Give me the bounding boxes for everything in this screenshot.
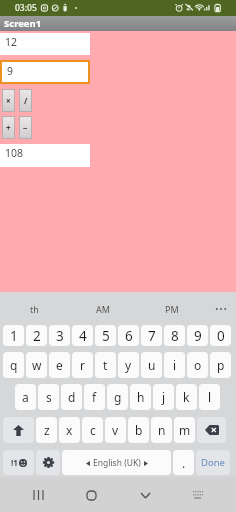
button[interactable]: d bbox=[61, 384, 82, 410]
staticText: PM bbox=[165, 303, 179, 315]
button[interactable]: AM bbox=[68, 292, 137, 325]
staticText: Done bbox=[201, 456, 225, 469]
button[interactable]: 8 bbox=[164, 325, 185, 346]
button[interactable]: Recents bbox=[23, 480, 53, 510]
button[interactable]: Backspace bbox=[197, 417, 226, 443]
button[interactable]: x bbox=[59, 417, 80, 443]
staticText: x bbox=[66, 422, 73, 438]
staticText: 1 bbox=[10, 327, 18, 345]
staticText: o bbox=[194, 357, 202, 373]
button[interactable]: t bbox=[95, 352, 116, 378]
staticText: a bbox=[22, 389, 29, 405]
staticText: 0 bbox=[217, 327, 225, 345]
button[interactable]: p bbox=[210, 352, 231, 378]
staticText: p bbox=[217, 357, 225, 373]
button[interactable]: m bbox=[174, 417, 195, 443]
staticText: × bbox=[6, 95, 11, 106]
staticText: Screen1 bbox=[4, 17, 42, 30]
button[interactable]: v bbox=[105, 417, 126, 443]
staticText: l bbox=[208, 389, 212, 405]
staticText: s bbox=[46, 389, 52, 405]
staticText: . bbox=[182, 455, 186, 471]
staticText: j bbox=[162, 389, 166, 405]
button[interactable]: l bbox=[199, 384, 220, 410]
staticText: h bbox=[137, 389, 145, 405]
button[interactable]: 0 bbox=[210, 325, 231, 346]
button[interactable]: c bbox=[82, 417, 103, 443]
button[interactable]: a bbox=[15, 384, 36, 410]
staticText: 2 bbox=[33, 327, 41, 345]
staticText: − bbox=[23, 122, 28, 133]
staticText: 7 bbox=[148, 327, 156, 345]
button[interactable]: n bbox=[151, 417, 172, 443]
button[interactable]: y bbox=[118, 352, 139, 378]
staticText: e bbox=[56, 357, 63, 373]
button[interactable]: 5 bbox=[95, 325, 116, 346]
button[interactable]: PM bbox=[137, 292, 206, 325]
button[interactable]: 9 bbox=[187, 325, 208, 346]
button[interactable]: th bbox=[0, 292, 68, 325]
button[interactable]: 3 bbox=[49, 325, 70, 346]
button[interactable]: j bbox=[153, 384, 174, 410]
button[interactable]: More options bbox=[206, 292, 236, 325]
button[interactable]: g bbox=[107, 384, 128, 410]
button[interactable]: English (UK) bbox=[62, 450, 171, 475]
staticText: 6 bbox=[125, 327, 133, 345]
button[interactable]: 4 bbox=[72, 325, 93, 346]
button[interactable]: o bbox=[187, 352, 208, 378]
button[interactable]: Settings bbox=[36, 450, 60, 475]
button[interactable]: s bbox=[38, 384, 59, 410]
button[interactable]: r bbox=[72, 352, 93, 378]
staticText: n bbox=[158, 422, 166, 438]
button[interactable]: q bbox=[3, 352, 24, 378]
button[interactable]: Shift bbox=[3, 417, 34, 443]
staticText: b bbox=[135, 422, 143, 438]
staticText: 108 bbox=[5, 146, 24, 160]
staticText: r bbox=[80, 357, 85, 373]
button[interactable]: − bbox=[19, 116, 32, 139]
staticText: k bbox=[183, 389, 190, 405]
button[interactable]: 6 bbox=[118, 325, 139, 346]
button[interactable]: 1 bbox=[3, 325, 24, 346]
staticText: / bbox=[24, 95, 28, 106]
staticText: th bbox=[30, 303, 39, 315]
staticText: 12 bbox=[5, 35, 18, 49]
staticText: 8 bbox=[171, 327, 179, 345]
button[interactable]: + bbox=[2, 116, 15, 139]
button[interactable]: 108 bbox=[0, 144, 90, 167]
button[interactable]: 2 bbox=[26, 325, 47, 346]
button[interactable]: k bbox=[176, 384, 197, 410]
staticText: 3 bbox=[56, 327, 64, 345]
button[interactable]: Hide keyboard bbox=[130, 480, 160, 510]
staticText: t bbox=[103, 357, 108, 373]
button[interactable]: × bbox=[2, 89, 15, 112]
button[interactable]: i bbox=[164, 352, 185, 378]
button[interactable]: 9 bbox=[2, 62, 88, 82]
button[interactable]: Switch keyboard bbox=[183, 480, 213, 510]
button[interactable]: z bbox=[36, 417, 57, 443]
button[interactable]: b bbox=[128, 417, 149, 443]
staticText: !1 bbox=[11, 457, 18, 468]
button[interactable]: 7 bbox=[141, 325, 162, 346]
staticText: u bbox=[148, 357, 156, 373]
staticText: z bbox=[44, 422, 50, 438]
button[interactable]: h bbox=[130, 384, 151, 410]
button[interactable]: e bbox=[49, 352, 70, 378]
button[interactable]: f bbox=[84, 384, 105, 410]
staticText: i bbox=[173, 357, 177, 373]
button[interactable]: . bbox=[173, 450, 194, 475]
button[interactable]: / bbox=[19, 89, 32, 112]
staticText: 9 bbox=[7, 64, 14, 78]
staticText: 5 bbox=[102, 327, 110, 345]
staticText: AM bbox=[96, 303, 110, 315]
button[interactable]: Symbols bbox=[3, 450, 34, 475]
staticText: c bbox=[90, 422, 96, 438]
staticText: m bbox=[179, 422, 191, 438]
button[interactable]: Done bbox=[196, 450, 230, 475]
button[interactable]: w bbox=[26, 352, 47, 378]
button[interactable]: 12 bbox=[0, 33, 90, 55]
staticText: q bbox=[10, 357, 18, 373]
button[interactable]: Home bbox=[76, 480, 106, 510]
staticText: 03:05 bbox=[15, 2, 37, 14]
button[interactable]: u bbox=[141, 352, 162, 378]
